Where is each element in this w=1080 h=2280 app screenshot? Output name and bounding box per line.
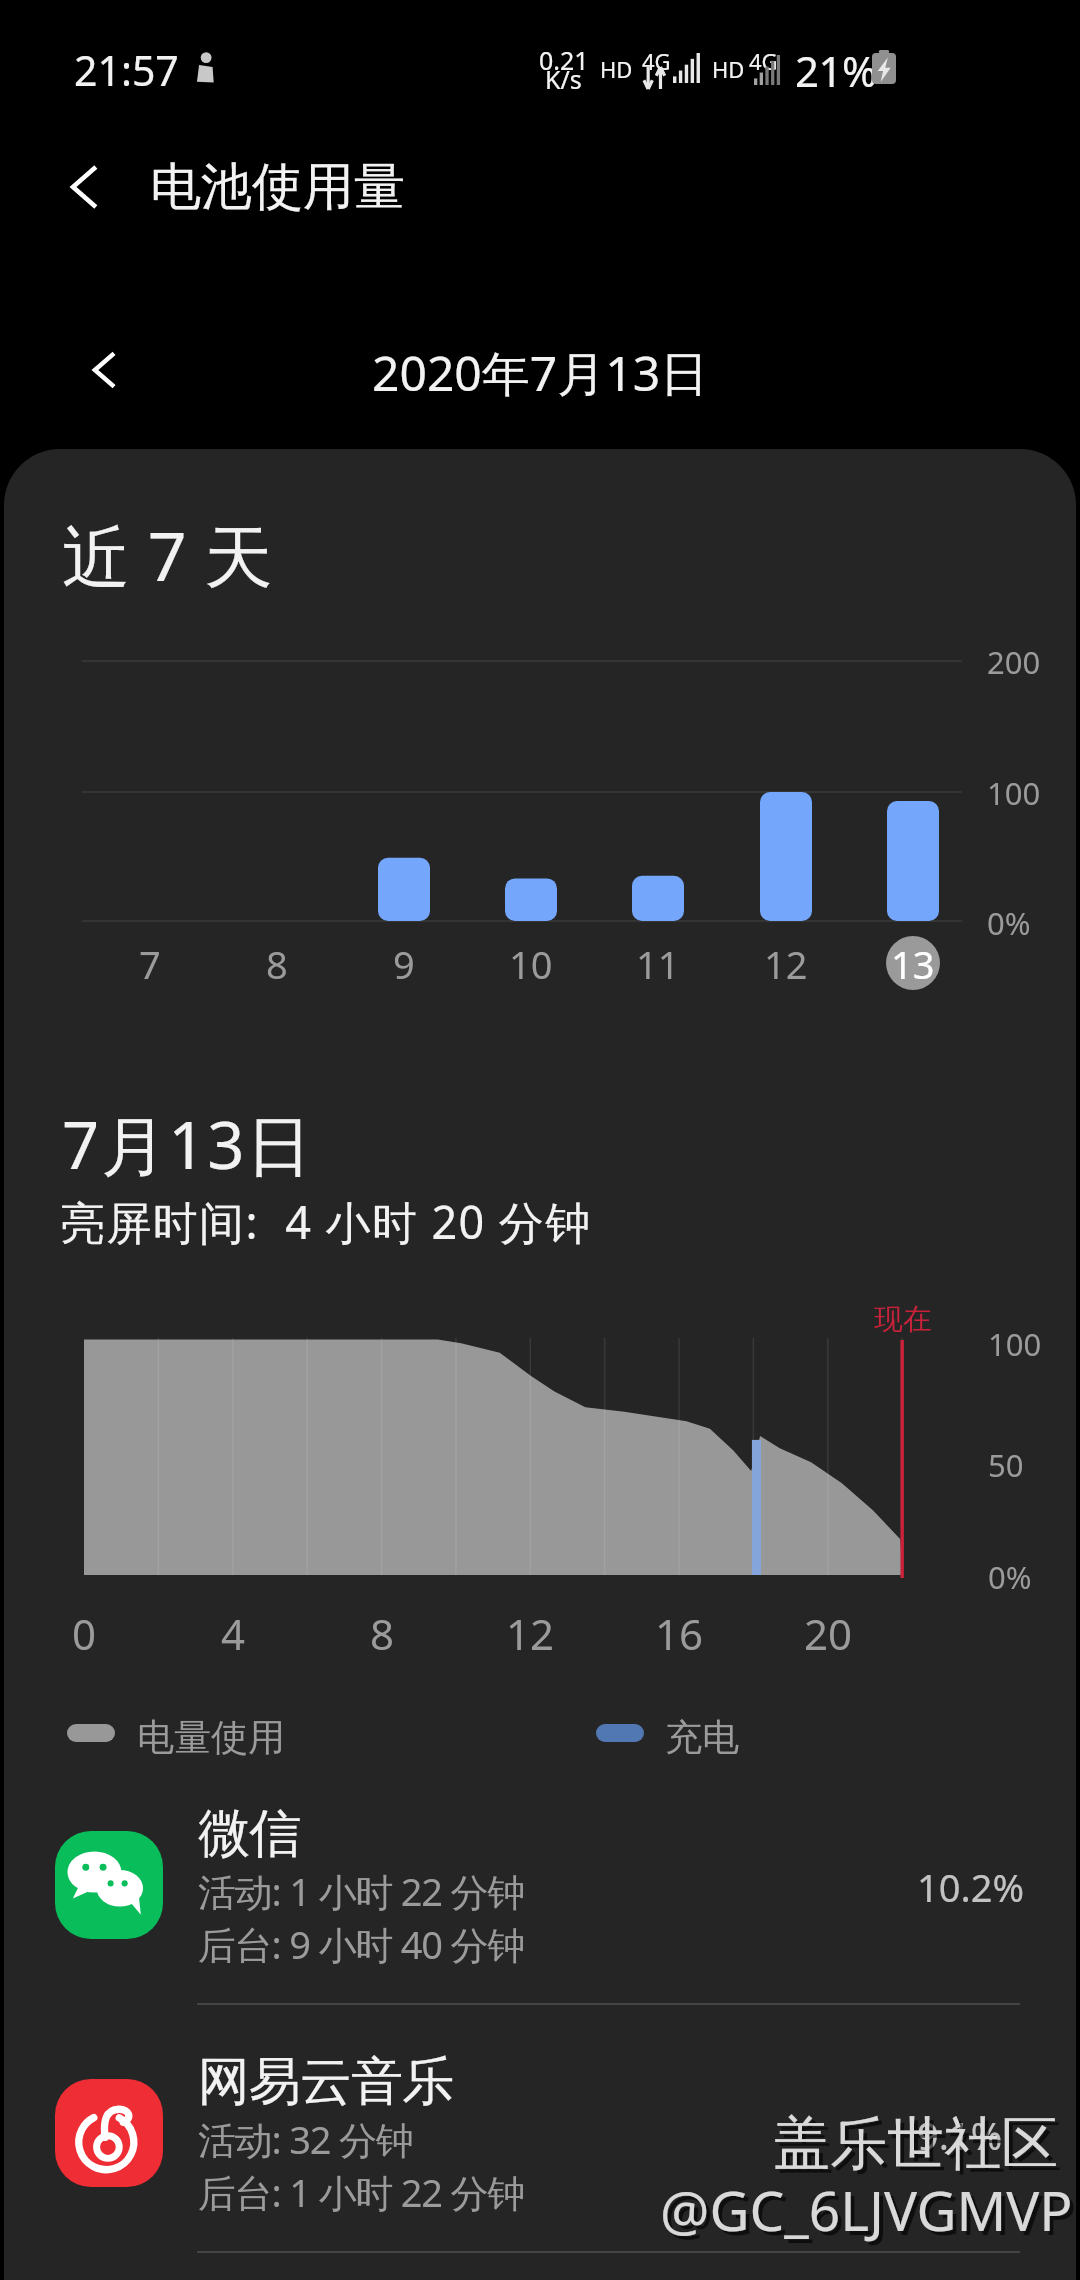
staticText: 12 [506, 1605, 555, 1659]
staticText: 21:57 [74, 42, 179, 98]
staticText: 9 [393, 938, 415, 988]
staticText: 4G [749, 46, 778, 76]
staticText: 7月13日 [62, 1100, 314, 1189]
staticText: 近 7 天 [62, 508, 273, 601]
staticText: 现在 [874, 1301, 932, 1338]
staticText: 100 [987, 772, 1041, 814]
staticText: HD [712, 54, 745, 84]
staticText: 200 [987, 641, 1041, 683]
staticText: 50 [988, 1444, 1024, 1486]
staticText: 0% [988, 1556, 1032, 1598]
staticText: 13 [891, 938, 935, 988]
button[interactable]: Previous day [70, 336, 138, 404]
button[interactable]: Back [0, 130, 1080, 250]
button[interactable]: Back [42, 145, 126, 229]
button[interactable]: 微信 [0, 1779, 1080, 2029]
staticText: 电量使用 [137, 1714, 285, 1761]
staticText: 盖乐世社区 [773, 2108, 1058, 2180]
staticText: 活动: 1 小时 22 分钟 [198, 1865, 525, 1917]
staticText: 10 [509, 938, 553, 988]
staticText: 4G [642, 46, 671, 76]
staticText: @GC_6LJVGMVP [664, 2176, 1077, 2251]
staticText: 100 [988, 1323, 1042, 1365]
staticText: 8 [370, 1605, 395, 1659]
staticText: 4 [221, 1605, 246, 1659]
staticText: 16 [655, 1605, 704, 1659]
staticText: 后台: 9 小时 40 分钟 [198, 1918, 525, 1970]
button[interactable]: 网易云音乐 [0, 2027, 1080, 2277]
staticText: 7 [139, 938, 161, 988]
staticText: 网易云音乐 [198, 2049, 454, 2115]
staticText: 后台: 1 小时 22 分钟 [198, 2166, 525, 2218]
staticText: 0% [987, 902, 1031, 944]
staticText: 0 [72, 1605, 97, 1659]
staticText: 盖乐世社区 [777, 2112, 1062, 2184]
staticText: 2020年7月13日 [372, 340, 709, 406]
staticText: 11 [636, 938, 680, 988]
staticText: 21% [795, 42, 877, 99]
staticText: K/s [545, 62, 582, 96]
staticText: 微信 [198, 1801, 301, 1867]
staticText: 12 [764, 938, 808, 988]
staticText: 亮屏时间: 4 小时 20 分钟 [60, 1191, 592, 1252]
staticText: 9.1% [917, 2109, 1003, 2161]
staticText: @GC_6LJVGMVP [660, 2172, 1073, 2247]
staticText: 10.2% [917, 1861, 1024, 1913]
staticText: 活动: 32 分钟 [198, 2113, 413, 2165]
staticText: 充电 [665, 1714, 739, 1761]
staticText: 20 [804, 1605, 853, 1659]
staticText: 8 [266, 938, 288, 988]
staticText: 电池使用量 [150, 155, 405, 219]
staticText: 0.21 [539, 43, 589, 77]
staticText: HD [600, 54, 633, 84]
